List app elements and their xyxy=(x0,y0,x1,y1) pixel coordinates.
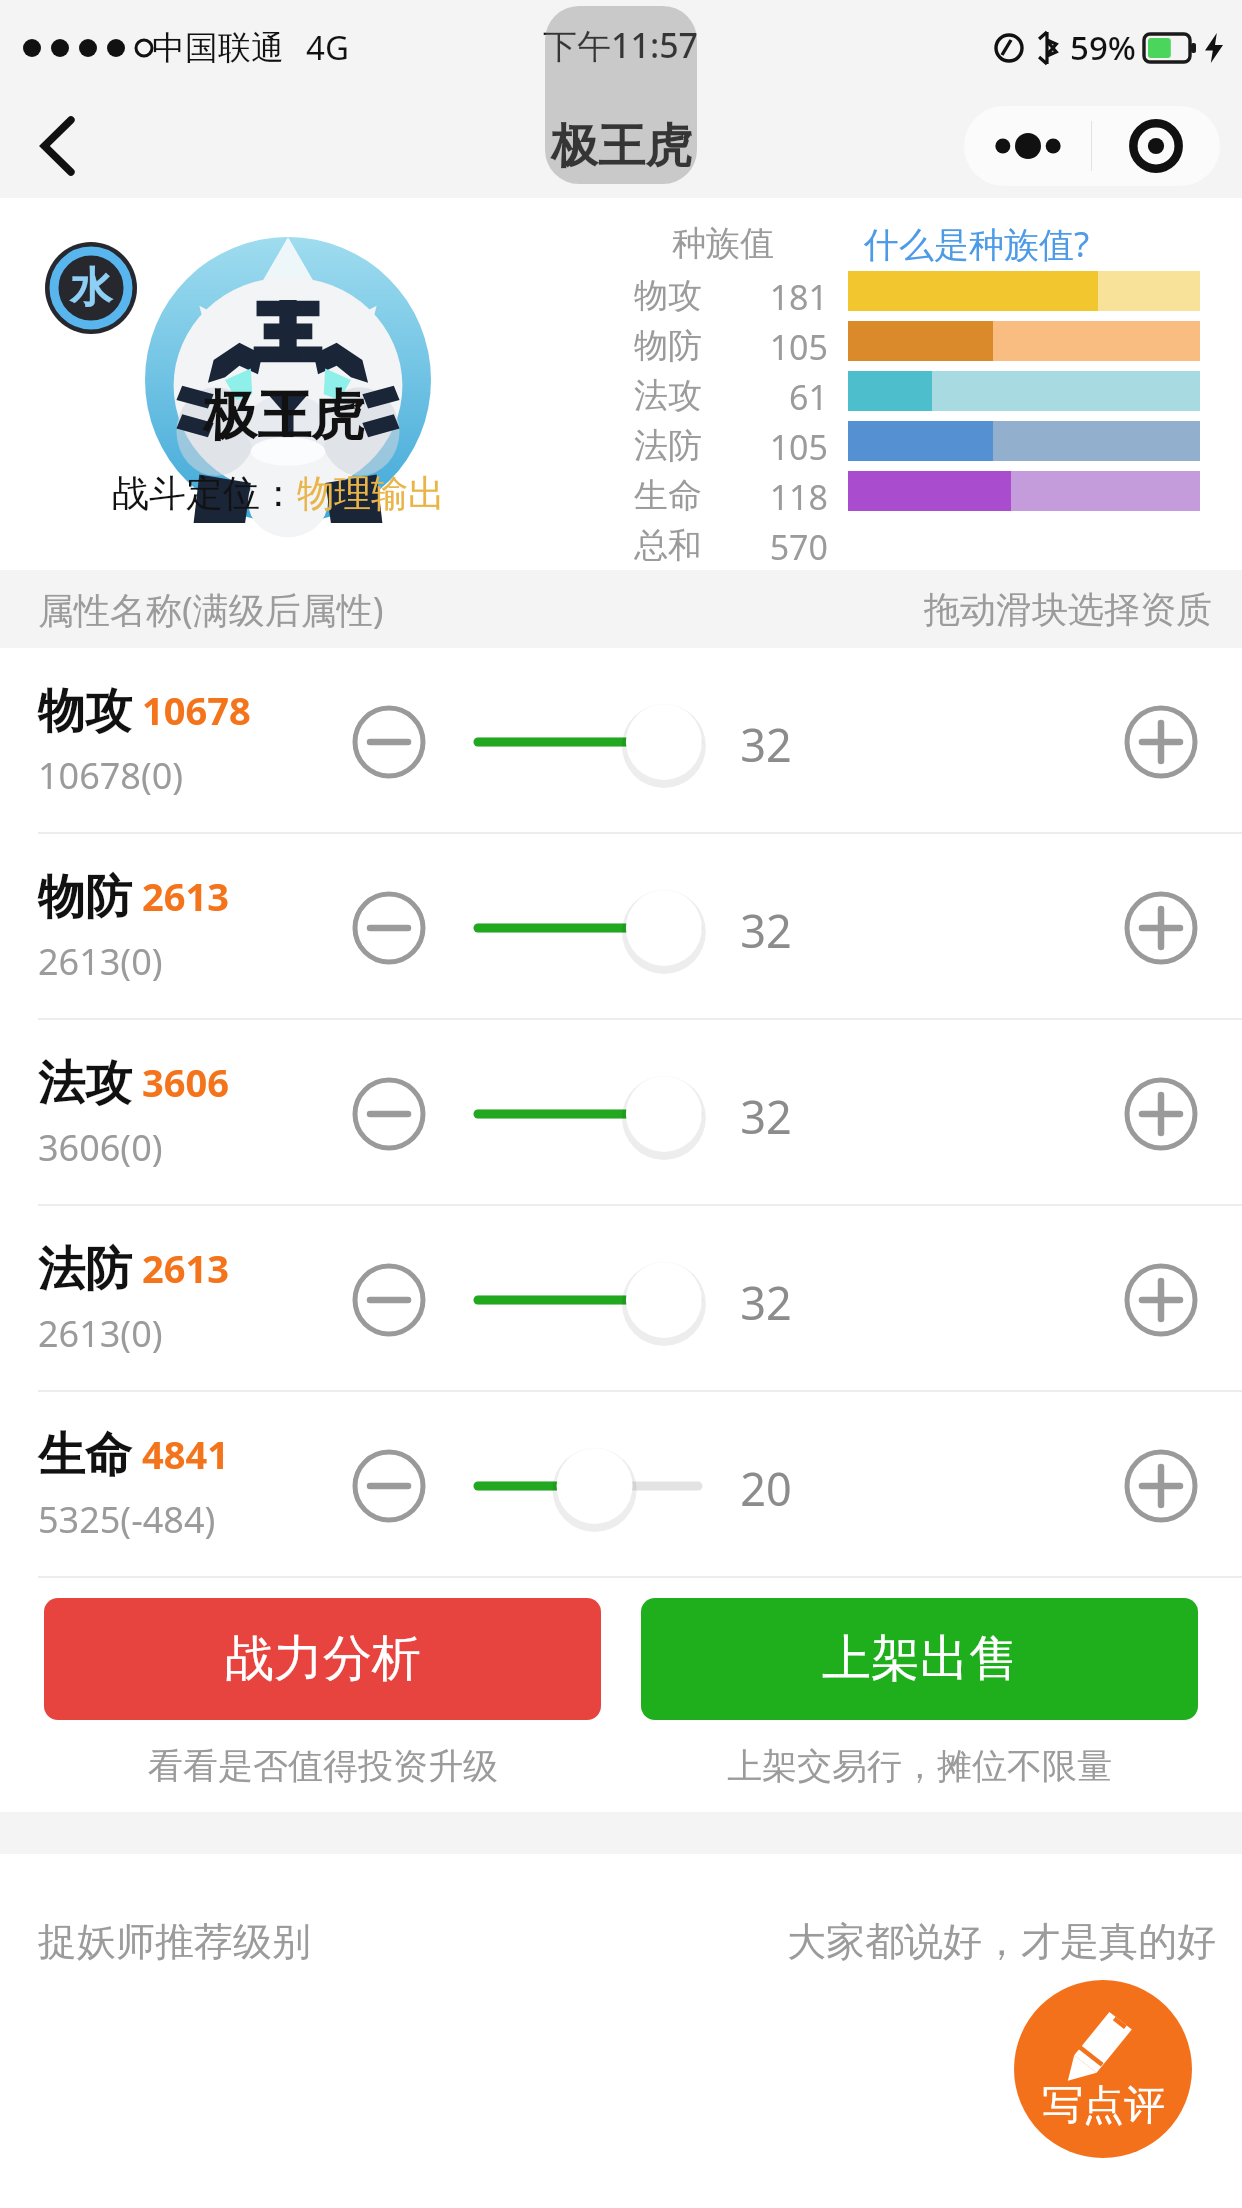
staticText: 大家都说好，才是真的好 xyxy=(787,1917,1216,1966)
staticText: 物攻 xyxy=(38,682,132,741)
staticText: 生命 xyxy=(38,1426,132,1485)
staticText: 3606 xyxy=(142,1056,229,1108)
staticText: 物防 xyxy=(38,868,132,927)
staticText: 总和 xyxy=(634,524,702,567)
staticText: 10678(0) xyxy=(38,751,184,800)
button[interactable]: Increase 生命 xyxy=(1122,1447,1200,1525)
staticText: 生命 xyxy=(634,474,702,517)
button[interactable]: Increase 法防 xyxy=(1122,1261,1200,1339)
staticText: 59% xyxy=(1070,25,1136,70)
staticText: 32 xyxy=(716,1272,816,1333)
button[interactable]: More options xyxy=(964,106,1091,186)
staticText: 2613(0) xyxy=(38,1309,163,1358)
staticText: 32 xyxy=(716,714,816,775)
button[interactable]: 法防 quality slider xyxy=(468,1244,708,1356)
button[interactable]: 物攻 quality slider xyxy=(468,686,708,798)
staticText: 570 xyxy=(744,524,828,570)
staticText: 极王虎 xyxy=(551,117,692,176)
staticText: 拖动滑块选择资质 xyxy=(924,587,1212,632)
staticText: 物攻 xyxy=(634,274,702,317)
button[interactable]: Back xyxy=(12,100,104,192)
staticText: 看看是否值得投资升级 xyxy=(148,1744,498,1788)
staticText: 上架交易行，摊位不限量 xyxy=(727,1744,1112,1788)
staticText: 种族值 xyxy=(672,222,774,265)
staticText: 4G xyxy=(306,25,349,70)
button[interactable]: Close mini program xyxy=(1092,106,1220,186)
staticText: 什么是种族值? xyxy=(864,220,1090,268)
button[interactable]: 法攻 quality slider xyxy=(468,1058,708,1170)
staticText: 181 xyxy=(744,274,828,320)
staticText: 上架出售 xyxy=(822,1628,1018,1690)
staticText: 105 xyxy=(744,424,828,470)
staticText: 2613(0) xyxy=(38,937,163,986)
staticText: 水 xyxy=(70,262,112,315)
staticText: 属性名称(满级后属性) xyxy=(38,585,384,634)
staticText: 捉妖师推荐级别 xyxy=(38,1917,311,1966)
button[interactable]: 战力分析 xyxy=(44,1598,601,1720)
staticText: 物理输出 xyxy=(297,470,445,517)
staticText: 5325(-484) xyxy=(38,1495,216,1544)
staticText: 物防 xyxy=(634,324,702,367)
staticText: 105 xyxy=(744,324,828,370)
staticText: 3606(0) xyxy=(38,1123,163,1172)
button[interactable]: Increase 物防 xyxy=(1122,889,1200,967)
staticText: 法防 xyxy=(634,424,702,467)
button[interactable]: Decrease 物防 xyxy=(350,889,428,967)
staticText: 法防 xyxy=(38,1240,132,1299)
staticText: 32 xyxy=(716,1086,816,1147)
staticText: 20 xyxy=(716,1458,816,1519)
button[interactable]: Decrease 生命 xyxy=(350,1447,428,1525)
button[interactable]: 上架出售 xyxy=(641,1598,1198,1720)
staticText: 中国联通 xyxy=(152,27,284,69)
button[interactable]: 物防 quality slider xyxy=(468,872,708,984)
staticText: 法攻 xyxy=(634,374,702,417)
staticText: 2613 xyxy=(142,870,229,922)
staticText: 118 xyxy=(744,474,828,520)
button[interactable]: Increase 法攻 xyxy=(1122,1075,1200,1153)
staticText: 4841 xyxy=(142,1428,229,1480)
staticText: 61 xyxy=(744,374,828,420)
staticText: 2613 xyxy=(142,1242,229,1294)
staticText: 战斗定位： xyxy=(112,470,297,517)
staticText: 写点评 xyxy=(1042,2080,1165,2132)
staticText: 法攻 xyxy=(38,1054,132,1113)
button[interactable]: 什么是种族值? xyxy=(858,214,1096,274)
staticText: 32 xyxy=(716,900,816,961)
button[interactable]: Decrease 法防 xyxy=(350,1261,428,1339)
button[interactable]: Decrease 法攻 xyxy=(350,1075,428,1153)
button[interactable]: Decrease 物攻 xyxy=(350,703,428,781)
staticText: 下午11:57 xyxy=(543,22,699,68)
button[interactable]: 生命 quality slider xyxy=(468,1430,708,1542)
button[interactable]: 写点评 Write review xyxy=(1014,1980,1192,2158)
staticText: 战力分析 xyxy=(225,1628,421,1690)
staticText: 10678 xyxy=(142,684,251,736)
staticText: 极王虎 xyxy=(203,382,365,450)
button[interactable]: Increase 物攻 xyxy=(1122,703,1200,781)
